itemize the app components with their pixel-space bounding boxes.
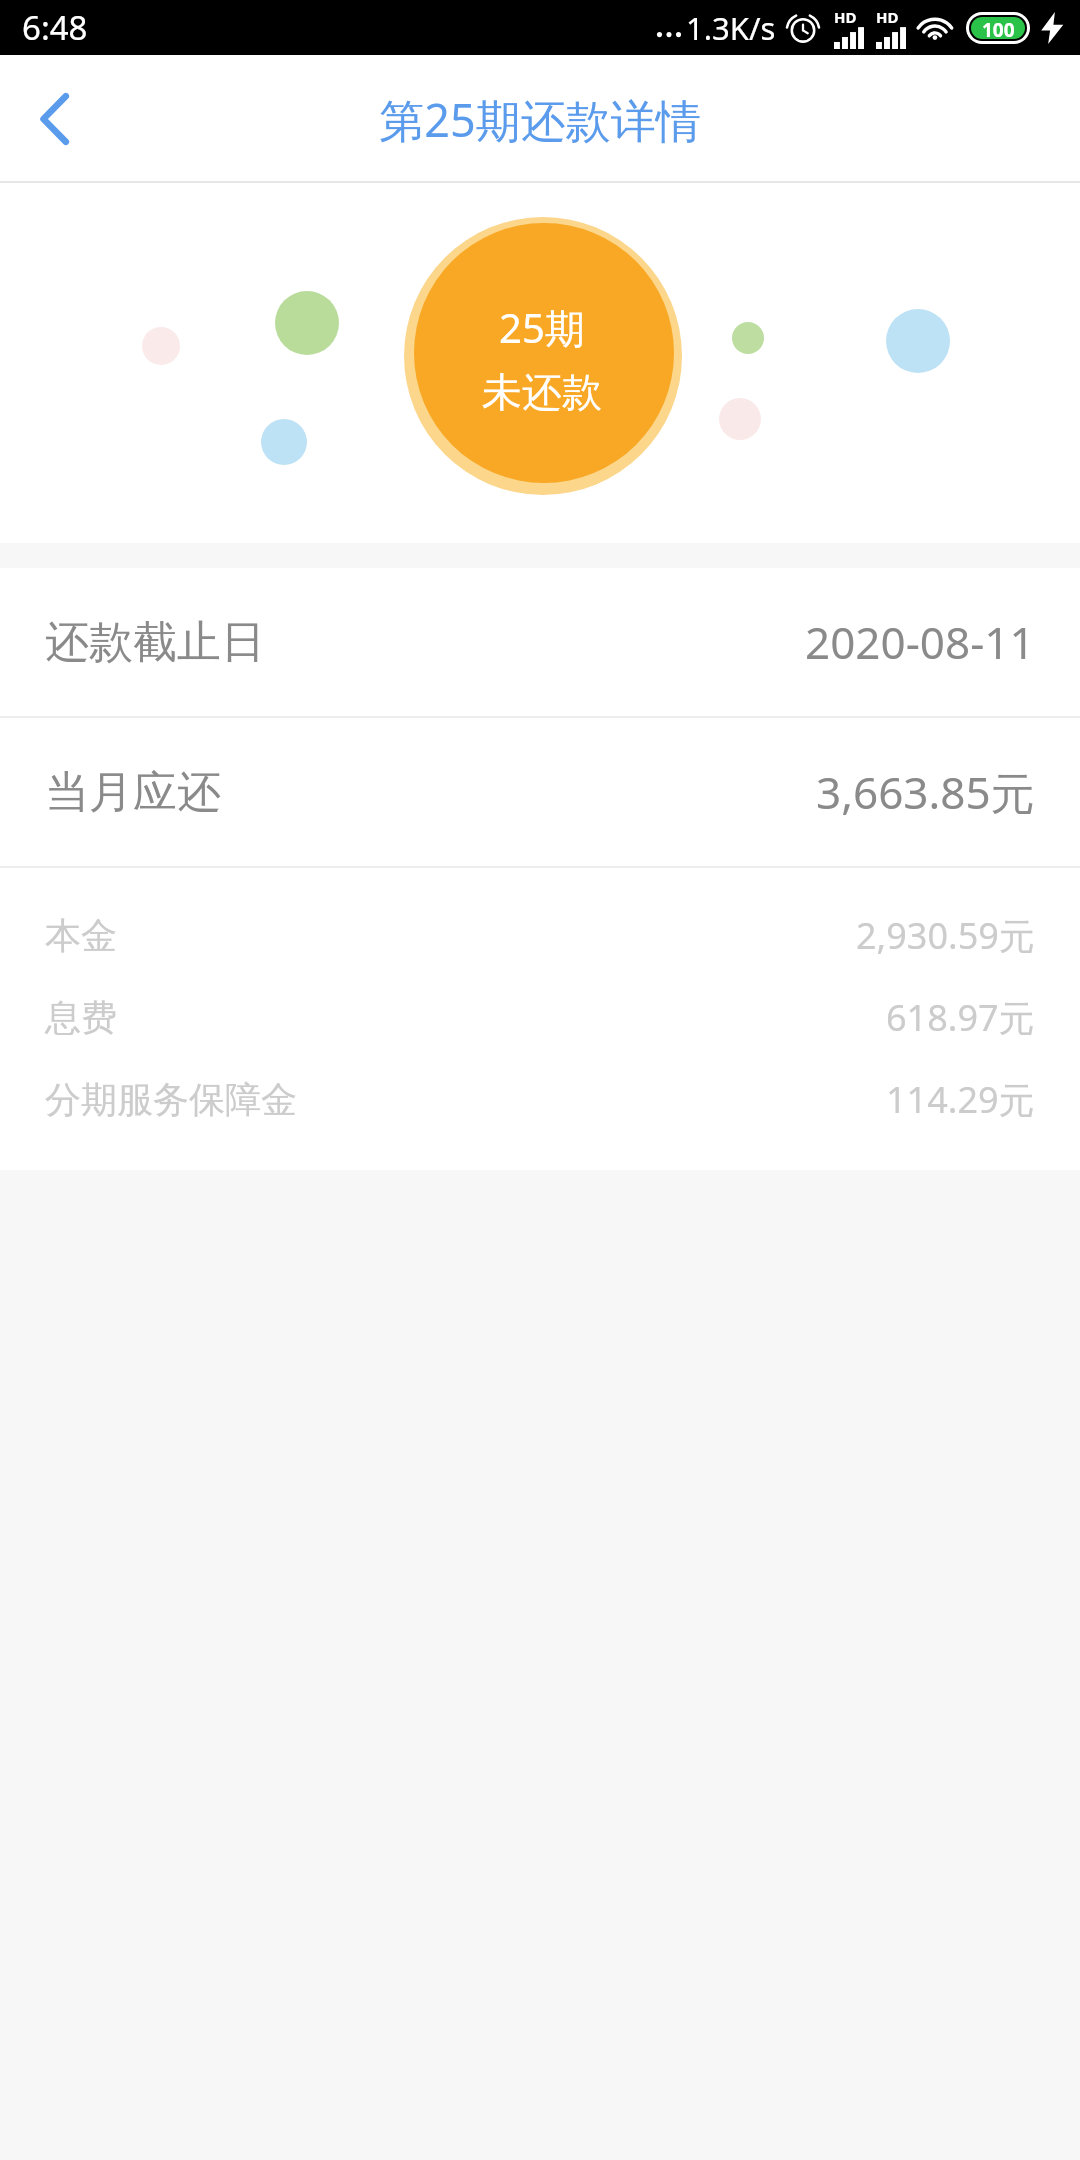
staticText: 25期 bbox=[499, 300, 585, 355]
staticText: 2,930.59元 bbox=[856, 911, 1035, 960]
staticText: 本金 bbox=[45, 913, 117, 958]
button[interactable]: 当月应还 bbox=[0, 718, 1080, 866]
button[interactable]: 息费 bbox=[0, 976, 1080, 1058]
button[interactable]: Back bbox=[0, 55, 110, 183]
staticText: HD bbox=[876, 7, 899, 27]
staticText: 第25期还款详情 bbox=[379, 89, 701, 150]
staticText: 分期服务保障金 bbox=[45, 1077, 297, 1122]
button[interactable]: 本金 bbox=[0, 894, 1080, 976]
staticText: 3,663.85元 bbox=[816, 762, 1035, 822]
staticText: 6:48 bbox=[22, 5, 88, 50]
button[interactable]: 还款截止日 bbox=[0, 568, 1080, 716]
staticText: 100 bbox=[982, 17, 1015, 39]
staticText: 还款截止日 bbox=[45, 615, 265, 670]
button[interactable]: 分期服务保障金 bbox=[0, 1058, 1080, 1140]
staticText: 618.97元 bbox=[886, 993, 1035, 1042]
staticText: 未还款 bbox=[482, 367, 602, 417]
staticText: 114.29元 bbox=[886, 1075, 1035, 1124]
staticText: 息费 bbox=[45, 995, 117, 1040]
staticText: 当月应还 bbox=[45, 765, 221, 820]
staticText: 2020-08-11 bbox=[805, 612, 1035, 672]
staticText: HD bbox=[834, 7, 857, 27]
staticText: 1.3K/s bbox=[686, 7, 776, 49]
